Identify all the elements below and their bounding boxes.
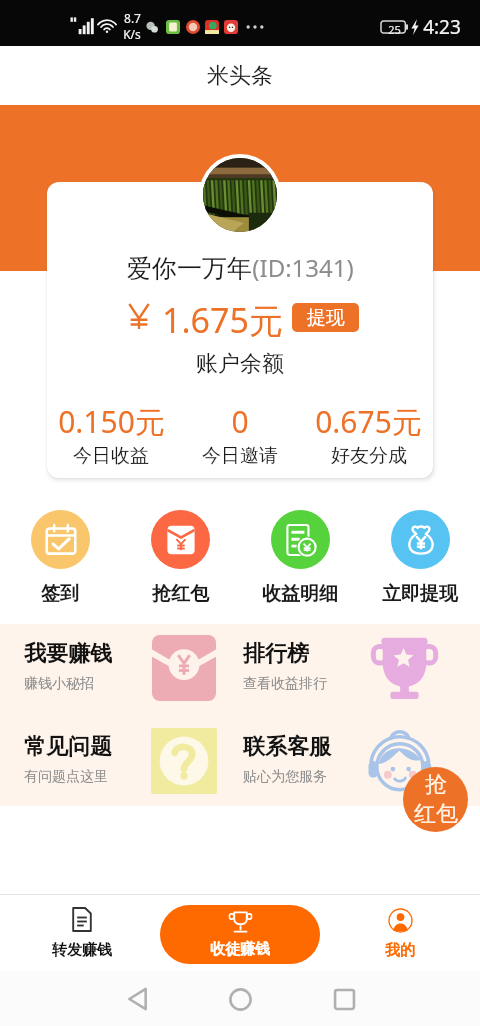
staticText: 爱你一万年 (127, 253, 252, 284)
staticText: 查看收益排行 (243, 675, 327, 693)
staticText: 立即提现 (382, 582, 458, 606)
staticText: 4:23 (423, 14, 461, 40)
button[interactable]: Recents (320, 975, 368, 1023)
staticText: 收徒赚钱 (210, 940, 270, 959)
staticText: 米头条 (207, 62, 273, 90)
staticText: 抢红包 (152, 582, 209, 606)
button[interactable]: 签到 (0, 510, 120, 606)
button[interactable]: 0.675元 (304, 401, 433, 468)
staticText: 收益明细 (262, 582, 338, 606)
staticText: 0.675元 (315, 401, 422, 442)
button[interactable]: 转发赚钱 (42, 907, 122, 960)
staticText: 25 (386, 22, 403, 37)
staticText: 账户余额 (196, 350, 284, 378)
staticText: 今日邀请 (202, 444, 278, 468)
staticText: 赚钱小秘招 (24, 675, 94, 693)
button[interactable]: 抢 (403, 767, 468, 832)
staticText: 0 (231, 401, 249, 442)
staticText: (ID:1341) (252, 251, 354, 284)
staticText: 红包 (414, 800, 458, 828)
button[interactable]: 立即提现 (360, 510, 480, 606)
button[interactable]: 我的 (360, 908, 440, 960)
staticText: 转发赚钱 (52, 941, 112, 960)
staticText: 抢 (425, 771, 447, 799)
button[interactable]: 我要赚钱 (24, 640, 144, 693)
staticText: 我的 (385, 941, 415, 960)
staticText: 1.675元 (162, 297, 283, 343)
staticText: 8.7 (124, 10, 141, 26)
button[interactable]: 常见问题 (24, 733, 144, 786)
staticText: 联系客服 (243, 733, 331, 761)
button[interactable]: 提现 (292, 303, 359, 332)
staticText: 好友分成 (331, 444, 407, 468)
staticText: 排行榜 (243, 640, 309, 668)
staticText: 贴心为您服务 (243, 768, 327, 786)
button[interactable]: Back (113, 975, 161, 1023)
staticText: 有问题点这里 (24, 768, 108, 786)
staticText: 提现 (307, 306, 345, 330)
button[interactable]: 收徒赚钱 (160, 905, 320, 964)
button[interactable]: 0 (175, 401, 304, 468)
staticText: K/s (123, 26, 141, 42)
staticText: 0.150元 (58, 401, 165, 442)
staticText: 今日收益 (73, 444, 149, 468)
staticText: 常见问题 (24, 733, 112, 761)
button[interactable]: 排行榜 (243, 640, 363, 693)
button[interactable]: 联系客服 (243, 733, 363, 786)
button[interactable]: 爱你一万年 (47, 182, 433, 478)
button[interactable]: 0.150元 (47, 401, 175, 468)
button[interactable]: 收益明细 (240, 510, 360, 606)
button[interactable]: Home (216, 975, 264, 1023)
staticText: 签到 (41, 582, 79, 606)
staticText: 我要赚钱 (24, 640, 112, 668)
button[interactable]: 抢红包 (120, 510, 240, 606)
